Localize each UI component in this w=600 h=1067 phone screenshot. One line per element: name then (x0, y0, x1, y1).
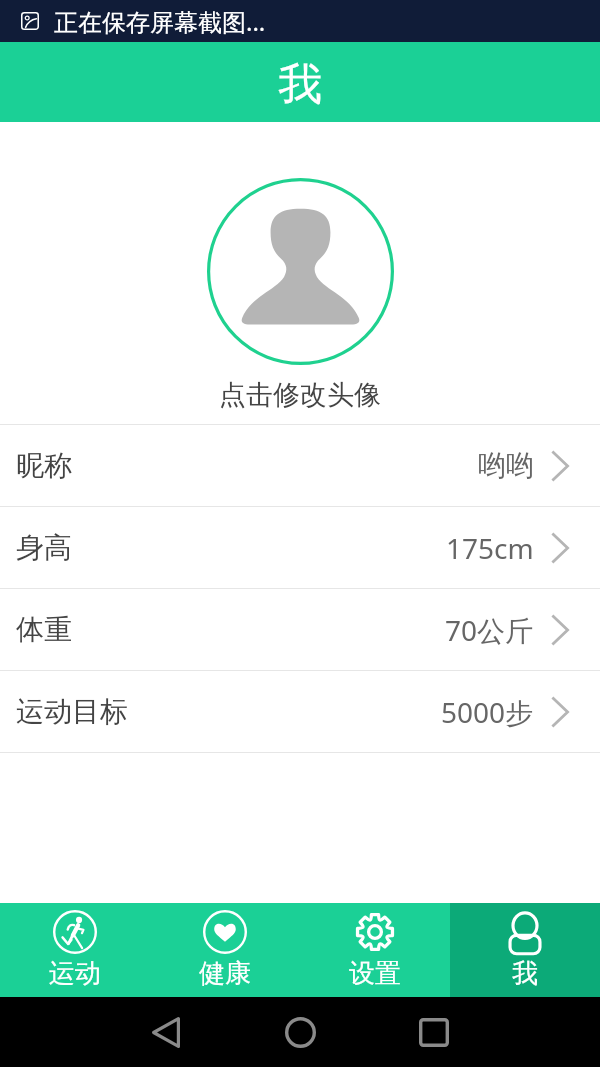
staticText: 我 (278, 57, 322, 112)
staticText: 5000步 (441, 693, 534, 731)
staticText: 我 (512, 957, 538, 990)
button[interactable]: Home (273, 1004, 327, 1060)
staticText: 70公斤 (445, 611, 534, 649)
staticText: 运动目标 (16, 694, 128, 729)
staticText: 点击修改头像 (219, 378, 381, 412)
button[interactable]: 体重 (0, 589, 600, 670)
staticText: 体重 (16, 612, 72, 647)
staticText: 运动 (49, 957, 101, 990)
staticText: 昵称 (16, 448, 72, 483)
staticText: 健康 (199, 957, 251, 990)
staticText: 175cm (446, 529, 534, 567)
button[interactable]: 身高 (0, 507, 600, 588)
button[interactable]: 运动目标 (0, 671, 600, 752)
staticText: 设置 (349, 957, 401, 990)
button[interactable]: Recents (407, 1004, 461, 1060)
button[interactable]: 修改头像 (207, 178, 394, 365)
button[interactable]: Back (139, 1004, 193, 1060)
staticText: 身高 (16, 530, 72, 565)
button[interactable]: 设置 (300, 903, 450, 997)
staticText: 哟哟 (478, 448, 534, 483)
button[interactable]: 运动 (0, 903, 150, 997)
button[interactable]: 昵称 (0, 425, 600, 506)
button[interactable]: 我 (450, 903, 600, 997)
button[interactable]: 健康 (150, 903, 300, 997)
staticText: 正在保存屏幕截图... (54, 5, 266, 38)
